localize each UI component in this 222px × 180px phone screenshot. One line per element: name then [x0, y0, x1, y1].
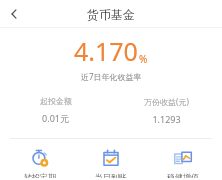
- staticText: 1.1293: [152, 113, 181, 125]
- button[interactable]: 稳健增值: [151, 147, 215, 180]
- staticText: 万份收益(元): [144, 96, 189, 107]
- staticText: 起投金额: [40, 96, 72, 106]
- staticText: 货币基金: [87, 7, 135, 22]
- staticText: %: [139, 52, 148, 66]
- button[interactable]: 转投定期: [8, 147, 72, 180]
- staticText: 近7日年化收益率: [81, 71, 142, 82]
- button[interactable]: 当日到账: [79, 147, 143, 180]
- staticText: 当日到账: [95, 172, 127, 178]
- staticText: 4.170: [74, 34, 138, 68]
- staticText: 0.01元: [42, 112, 69, 124]
- staticText: 稳健增值: [167, 172, 199, 178]
- staticText: 转投定期: [24, 172, 56, 178]
- button[interactable]: Back: [0, 0, 28, 28]
